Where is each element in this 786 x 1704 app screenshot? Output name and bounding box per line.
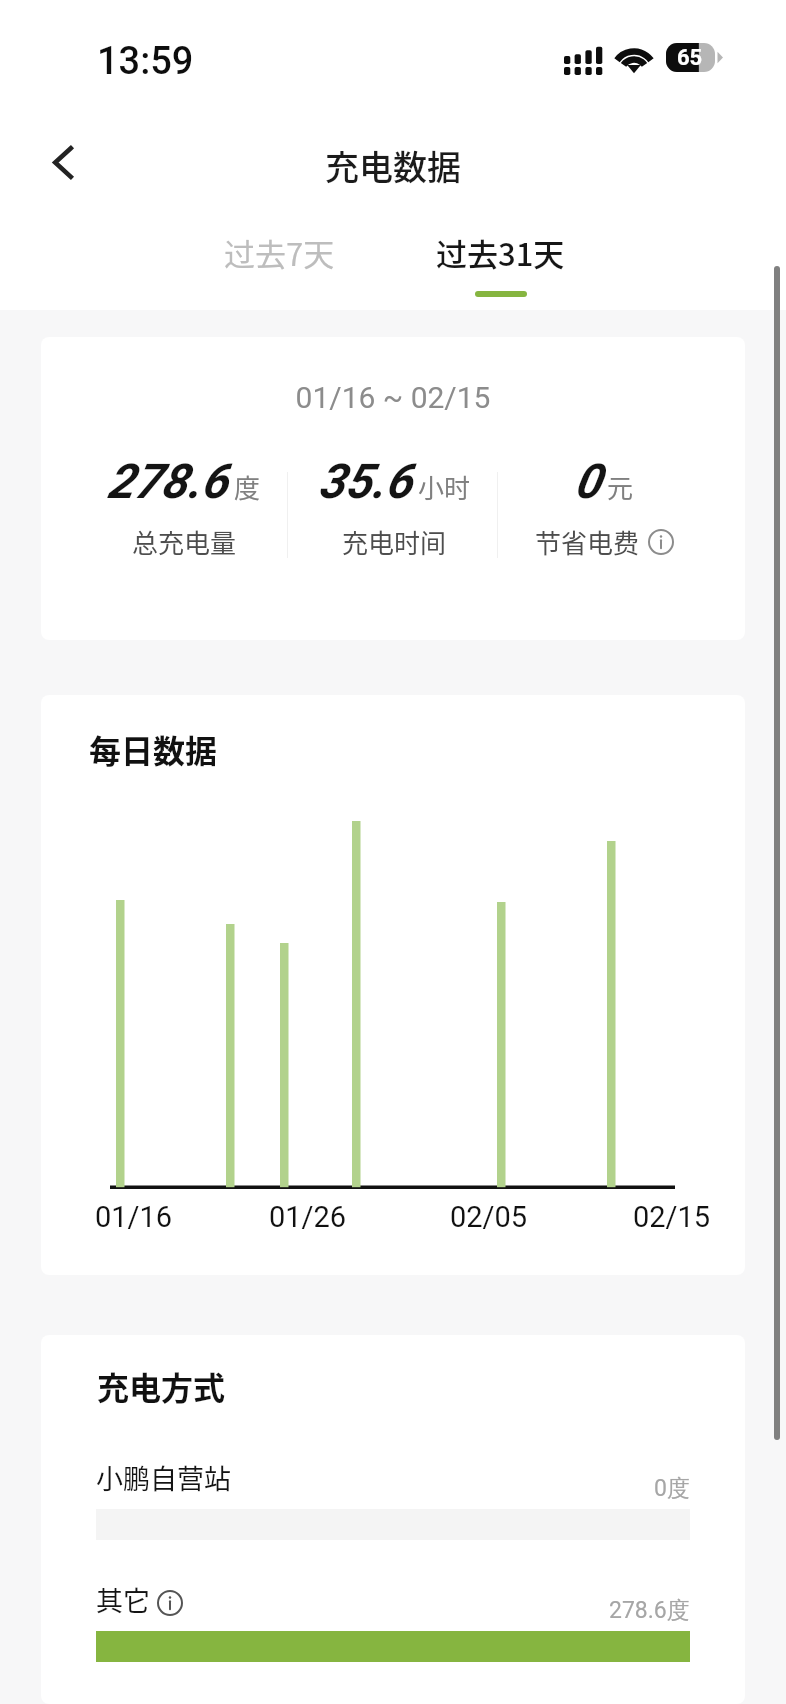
staticText: 01/16 [95, 1200, 173, 1234]
staticText: 节省电费 [535, 523, 640, 561]
button[interactable]: About other charging sources [157, 1590, 183, 1616]
staticText: 01/16 ~ 02/15 [41, 380, 745, 415]
staticText: 其它 [96, 1580, 150, 1619]
staticText: 278.6 [107, 453, 228, 509]
staticText: 02/15 [633, 1200, 711, 1234]
button[interactable]: About saved electricity cost [648, 529, 674, 555]
staticText: 过去31天 [436, 230, 565, 275]
staticText: 度 [234, 468, 261, 506]
staticText: 小鹏自营站 [96, 1458, 231, 1497]
staticText: 充电时间 [342, 523, 447, 561]
staticText: 65 [677, 45, 703, 71]
staticText: 总充电量 [132, 523, 237, 561]
staticText: 0 [574, 453, 601, 509]
staticText: 小时 [418, 468, 471, 506]
button[interactable]: 过去31天 [422, 222, 579, 305]
button[interactable]: Back [30, 133, 96, 191]
staticText: 过去7天 [224, 230, 335, 275]
staticText: 35.6 [318, 453, 412, 509]
staticText: 充电数据 [325, 141, 461, 190]
button[interactable]: 过去7天 [210, 222, 349, 305]
staticText: 充电方式 [97, 1363, 226, 1409]
staticText: 01/26 [269, 1200, 347, 1234]
staticText: 0度 [654, 1474, 690, 1503]
staticText: 元 [607, 468, 634, 506]
staticText: 每日数据 [89, 726, 218, 772]
staticText: 02/05 [450, 1200, 528, 1234]
staticText: 13:59 [97, 39, 194, 84]
staticText: 278.6度 [609, 1596, 690, 1625]
